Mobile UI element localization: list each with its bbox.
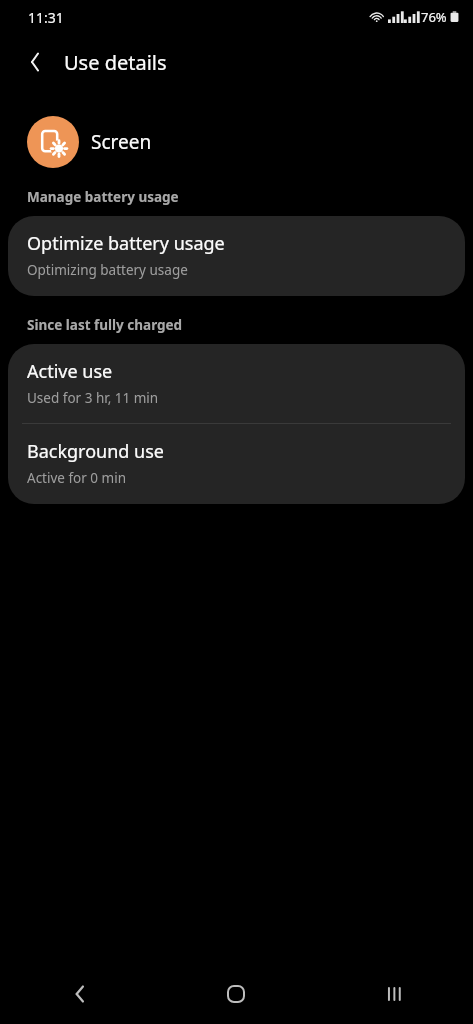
- staticText: Active for 0 min: [27, 469, 127, 487]
- staticText: Use details: [64, 49, 167, 76]
- staticText: Active use: [27, 359, 113, 384]
- staticText: Optimizing battery usage: [27, 261, 188, 279]
- button[interactable]: Background use: [8, 424, 465, 504]
- staticText: Manage battery usage: [27, 188, 179, 206]
- button[interactable]: Back: [18, 45, 52, 79]
- staticText: Used for 3 hr, 11 min: [27, 389, 159, 407]
- staticText: Optimize battery usage: [27, 231, 225, 256]
- button[interactable]: Recent apps: [315, 964, 473, 1024]
- button[interactable]: Optimize battery usage: [8, 216, 465, 296]
- staticText: 11:31: [28, 8, 64, 27]
- button[interactable]: Home: [157, 964, 315, 1024]
- staticText: 76%: [421, 8, 447, 26]
- button[interactable]: Back: [0, 964, 157, 1024]
- staticText: Since last fully charged: [27, 316, 183, 334]
- staticText: Screen: [91, 129, 152, 155]
- button[interactable]: Active use: [8, 344, 465, 423]
- staticText: Background use: [27, 439, 164, 464]
